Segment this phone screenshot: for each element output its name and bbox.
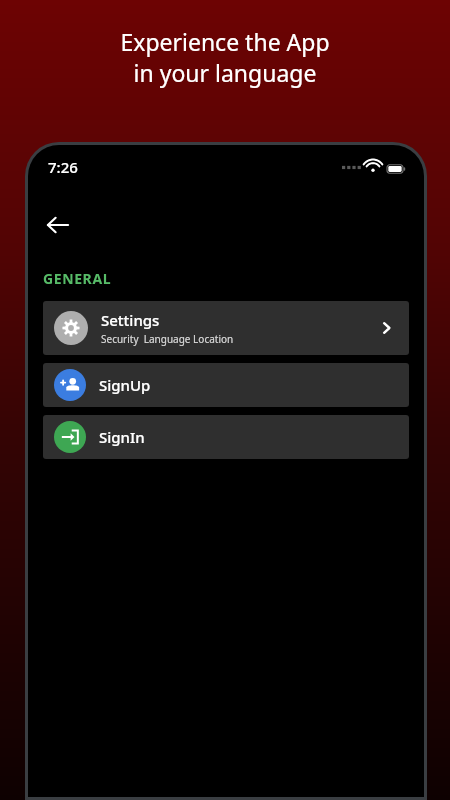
staticText: 7:26 [48,157,78,177]
button[interactable]: Back [36,203,80,247]
staticText: Experience the App in your language [0,26,450,89]
staticText: SignUp [99,375,151,395]
staticText: GENERAL [43,269,112,288]
staticText: Settings [101,310,160,330]
button[interactable]: SignUp [43,363,409,407]
button[interactable]: Settings [43,301,409,355]
staticText: SignIn [99,427,145,447]
staticText: Security Language Location [101,332,234,346]
button[interactable]: SignIn [43,415,409,459]
